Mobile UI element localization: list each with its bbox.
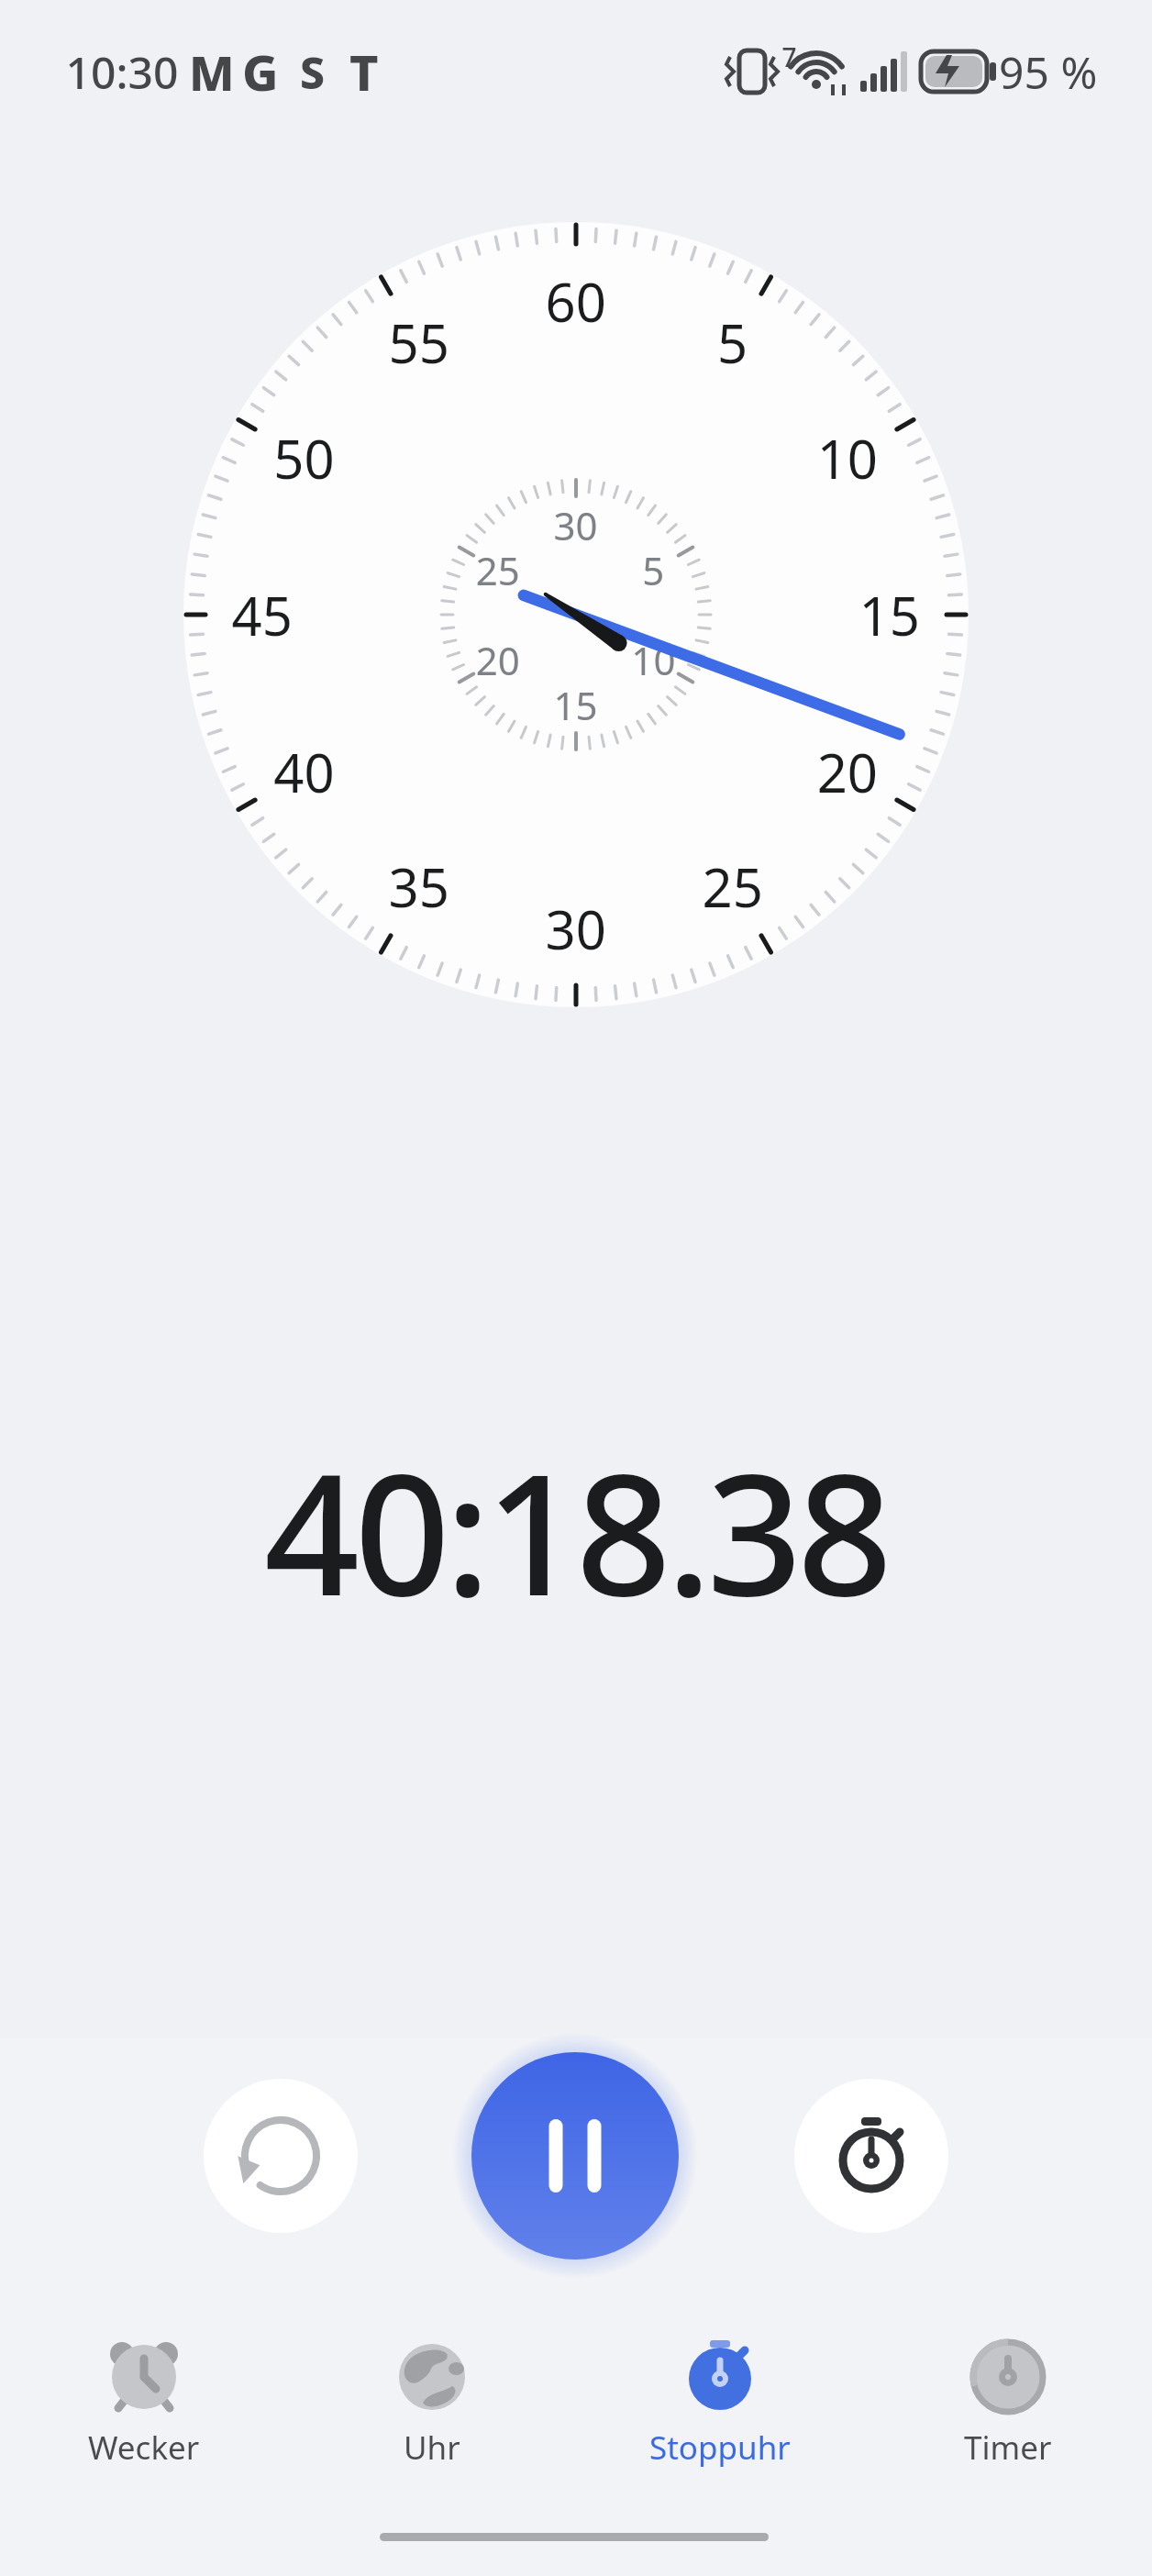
- button[interactable]: [471, 2052, 679, 2260]
- button[interactable]: Timer: [864, 2312, 1152, 2470]
- staticText: Timer: [964, 2426, 1052, 2470]
- button[interactable]: Stoppuhr: [576, 2312, 864, 2470]
- button[interactable]: [204, 2079, 358, 2233]
- staticText: Uhr: [404, 2426, 460, 2470]
- staticText: Stoppuhr: [649, 2426, 791, 2470]
- staticText: Wecker: [88, 2426, 200, 2470]
- button[interactable]: Uhr: [288, 2312, 576, 2470]
- button[interactable]: [794, 2079, 948, 2233]
- staticText: 40:18.38: [264, 1416, 888, 1627]
- button[interactable]: Wecker: [0, 2312, 288, 2470]
